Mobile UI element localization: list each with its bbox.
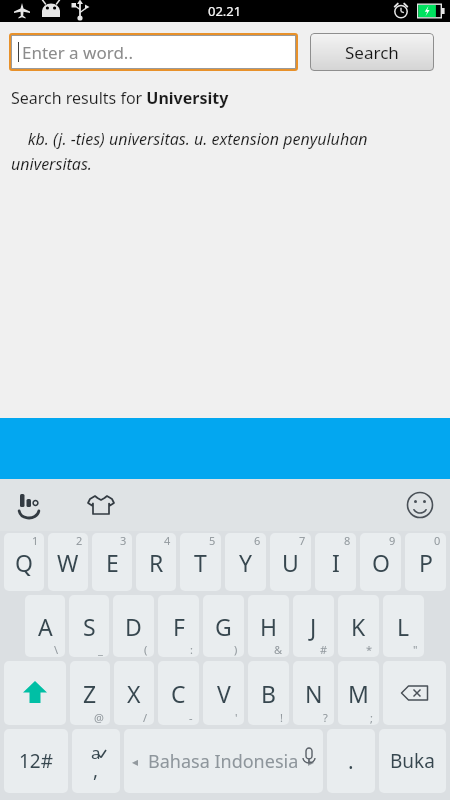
staticText: X xyxy=(127,678,141,709)
button[interactable]: J xyxy=(293,595,334,657)
staticText: 12# xyxy=(19,748,54,774)
staticText: N xyxy=(305,678,323,709)
button[interactable]: A xyxy=(25,595,65,657)
staticText: Buka xyxy=(390,748,435,774)
staticText: ? xyxy=(323,710,328,725)
button[interactable]: Buka xyxy=(379,729,446,793)
staticText: Search xyxy=(345,41,399,64)
staticText: Q xyxy=(15,547,33,578)
button[interactable]: T xyxy=(180,533,221,591)
button[interactable]: E xyxy=(92,533,132,591)
staticText: S xyxy=(83,611,96,642)
staticText: a xyxy=(91,741,101,764)
button[interactable]: G xyxy=(203,595,244,657)
staticText: 3 xyxy=(120,533,127,548)
staticText: 4 xyxy=(164,533,171,548)
staticText: Search results for University xyxy=(11,87,229,109)
staticText: 5 xyxy=(209,533,216,548)
staticText: T xyxy=(194,547,207,578)
staticText: # xyxy=(320,642,328,657)
staticText: " xyxy=(413,642,418,657)
button[interactable]: 12# xyxy=(4,729,68,793)
button[interactable]: Input options xyxy=(72,729,120,793)
button[interactable]: Enter a word.. xyxy=(11,35,296,69)
staticText: 8 xyxy=(344,533,351,548)
button[interactable]: X xyxy=(114,661,154,725)
button[interactable]: Emoji xyxy=(397,482,443,528)
button[interactable]: K xyxy=(338,595,379,657)
staticText: F xyxy=(173,611,185,642)
button[interactable]: Y xyxy=(225,533,266,591)
staticText: J xyxy=(310,611,317,642)
staticText: \ xyxy=(54,642,59,657)
button[interactable]: R xyxy=(136,533,176,591)
staticText: A xyxy=(38,611,53,642)
button[interactable]: Q xyxy=(4,533,44,591)
button[interactable]: N xyxy=(293,661,334,725)
staticText: G xyxy=(215,611,232,642)
staticText: kb. (j. -ties) universitas. u. extension… xyxy=(11,128,372,174)
staticText: 9 xyxy=(389,533,396,548)
button[interactable]: C xyxy=(158,661,199,725)
staticText: & xyxy=(274,642,283,657)
staticText: 02.21 xyxy=(208,2,242,20)
staticText: ; xyxy=(370,710,373,725)
button[interactable]: U xyxy=(270,533,311,591)
staticText: R xyxy=(149,547,164,578)
staticText: 0 xyxy=(434,533,441,548)
button[interactable]: H xyxy=(248,595,289,657)
button[interactable]: O xyxy=(360,533,401,591)
staticText: 6 xyxy=(254,533,261,548)
button[interactable]: . xyxy=(327,729,375,793)
staticText: - xyxy=(189,710,193,725)
staticText: C xyxy=(171,678,186,709)
staticText: ) xyxy=(234,642,238,657)
staticText: Y xyxy=(239,547,253,578)
staticText: 1 xyxy=(32,533,39,548)
staticText: L xyxy=(397,611,410,642)
button[interactable]: TouchPal menu xyxy=(6,482,52,528)
staticText: O xyxy=(372,547,390,578)
staticText: ( xyxy=(144,642,148,657)
staticText: Bahasa Indonesia xyxy=(148,749,299,774)
staticText: Enter a word.. xyxy=(22,41,133,64)
staticText: U xyxy=(282,547,299,578)
staticText: P xyxy=(419,547,433,578)
button[interactable]: F xyxy=(158,595,199,657)
staticText: ! xyxy=(280,710,283,725)
staticText: W xyxy=(57,547,79,578)
staticText: ◂ xyxy=(132,755,139,769)
staticText: : xyxy=(190,642,193,657)
staticText: V xyxy=(217,678,231,709)
staticText: . xyxy=(348,747,354,776)
button[interactable]: Theme xyxy=(78,482,124,528)
staticText: / xyxy=(143,710,148,725)
staticText: ' xyxy=(235,710,238,725)
staticText: B xyxy=(261,678,276,709)
button[interactable]: V xyxy=(203,661,244,725)
button[interactable]: L xyxy=(383,595,424,657)
staticText: M xyxy=(348,678,369,709)
button[interactable]: Backspace xyxy=(383,661,446,725)
staticText: _ xyxy=(98,642,103,657)
staticText: , xyxy=(93,757,99,783)
button[interactable]: I xyxy=(315,533,356,591)
button[interactable]: Search xyxy=(310,33,434,71)
button[interactable]: S xyxy=(69,595,109,657)
button[interactable]: B xyxy=(248,661,289,725)
staticText: K xyxy=(351,611,366,642)
staticText: E xyxy=(106,547,119,578)
button[interactable]: W xyxy=(48,533,88,591)
staticText: ▸ xyxy=(308,755,315,769)
button[interactable]: P xyxy=(405,533,446,591)
button[interactable]: Z xyxy=(70,661,110,725)
button[interactable]: Space, Bahasa Indonesia xyxy=(124,729,323,793)
staticText: I xyxy=(332,547,340,578)
button[interactable]: D xyxy=(113,595,154,657)
staticText: 2 xyxy=(76,533,83,548)
button[interactable]: M xyxy=(338,661,379,725)
staticText: * xyxy=(366,642,373,657)
staticText: @ xyxy=(94,710,104,725)
button[interactable]: Shift xyxy=(4,661,66,725)
